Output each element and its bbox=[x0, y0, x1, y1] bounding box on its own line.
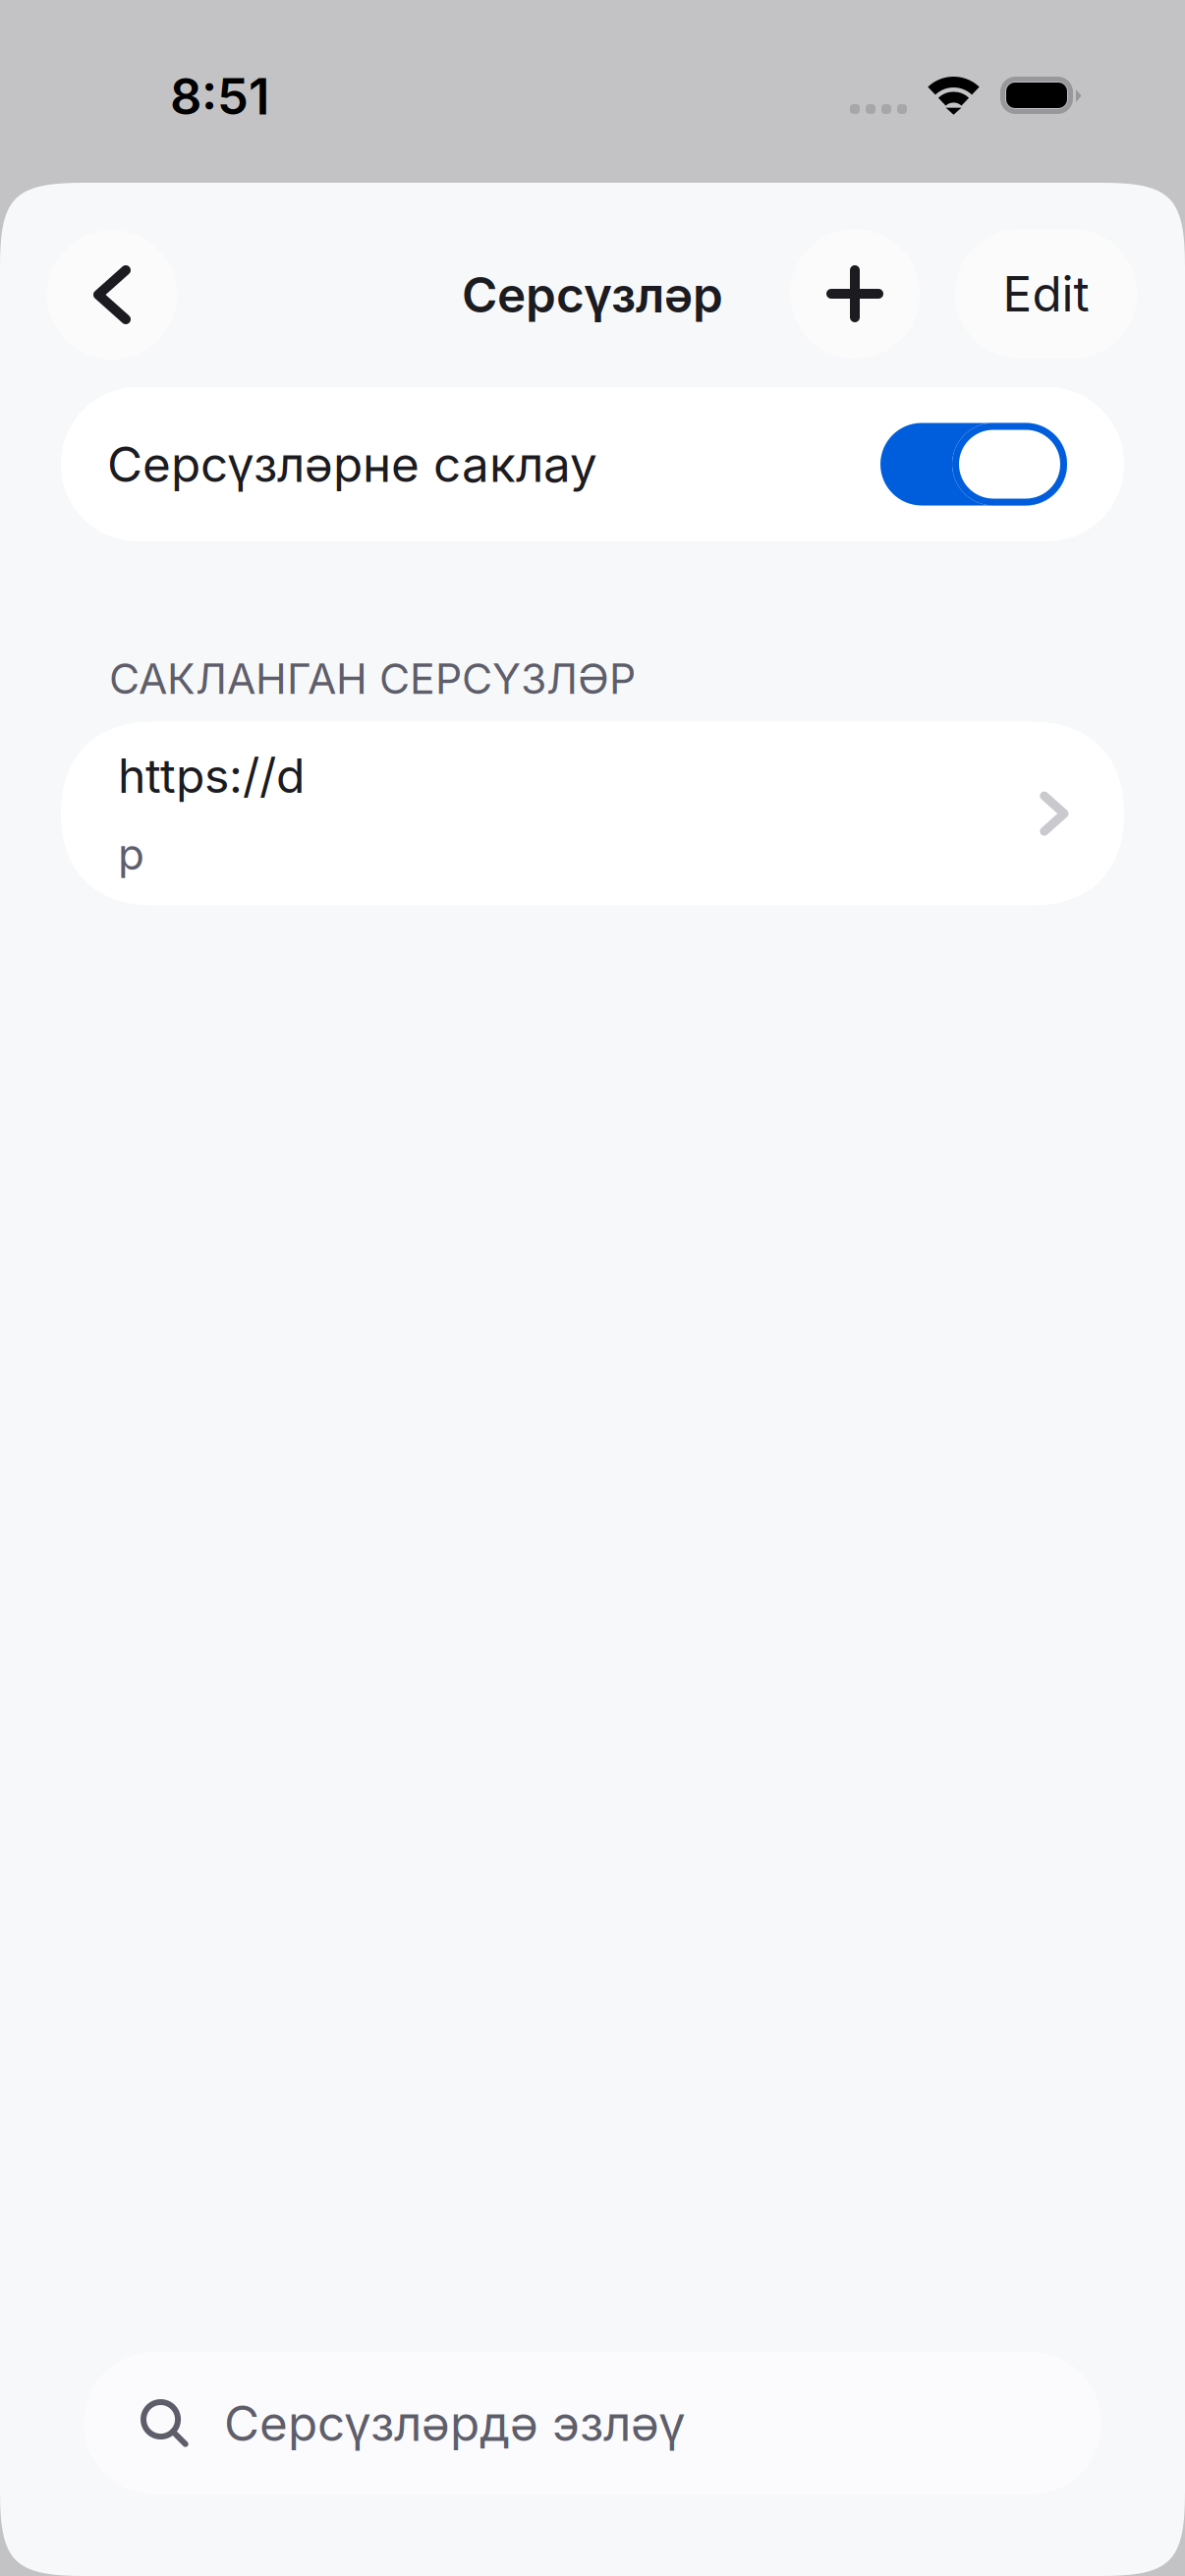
button[interactable]: Серсүзләрдә эзләү bbox=[84, 2352, 1101, 2494]
button[interactable]: https://d bbox=[61, 722, 1124, 905]
button[interactable]: Edit bbox=[955, 229, 1137, 359]
staticText: Серсүзләр bbox=[462, 265, 723, 324]
staticText: https://d bbox=[118, 747, 305, 804]
staticText: p bbox=[118, 828, 144, 880]
staticText: Edit bbox=[1003, 264, 1089, 323]
staticText: САКЛАНГАН СЕРСҮЗЛӘР bbox=[109, 653, 636, 704]
staticText: 8:51 bbox=[170, 66, 269, 126]
button[interactable]: Back bbox=[47, 230, 177, 360]
button[interactable]: Add password bbox=[790, 229, 920, 359]
staticText: Серсүзләрне саклау bbox=[107, 435, 597, 494]
button[interactable]: Серсүзләрне саклау bbox=[61, 387, 1124, 541]
staticText: Серсүзләрдә эзләү bbox=[224, 2394, 686, 2453]
